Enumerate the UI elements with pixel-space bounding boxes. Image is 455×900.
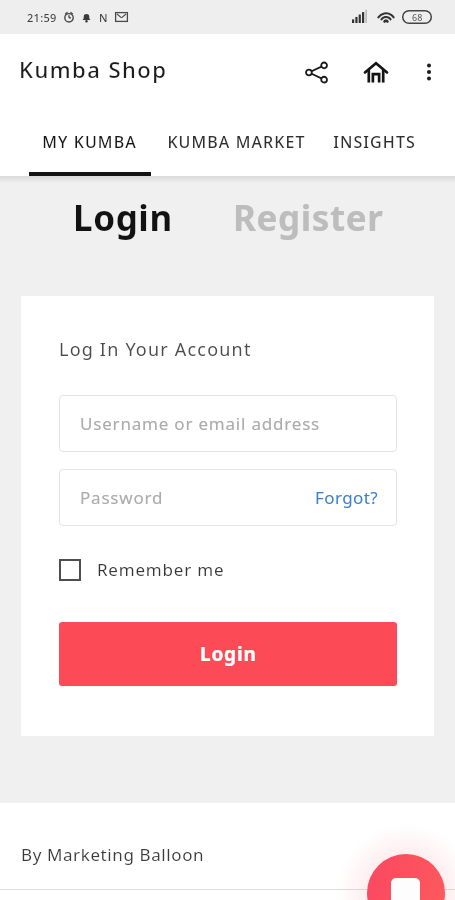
button[interactable]: Share	[293, 49, 339, 95]
button[interactable]: Username or email address	[59, 395, 397, 452]
staticText: Remember me	[97, 558, 225, 581]
staticText: Login	[73, 194, 173, 242]
staticText: Kumba Shop	[19, 54, 168, 84]
button[interactable]: INSIGHTS	[299, 110, 449, 176]
button[interactable]: More options	[408, 51, 450, 93]
staticText: Forgot?	[315, 486, 379, 509]
button[interactable]: Register	[233, 194, 384, 242]
button[interactable]: Remember me	[59, 558, 225, 581]
staticText: 21:59	[27, 10, 57, 25]
staticText: Log In Your Account	[59, 337, 252, 362]
staticText: By Marketing Balloon	[21, 843, 205, 866]
button[interactable]: Login	[73, 194, 173, 242]
staticText: 68	[412, 11, 423, 23]
staticText: N	[99, 10, 108, 25]
button[interactable]: Password	[59, 469, 397, 526]
staticText: Login	[200, 641, 257, 667]
button[interactable]: Login	[59, 622, 397, 686]
staticText: Username or email address	[80, 412, 321, 435]
button[interactable]: KUMBA MARKET	[167, 110, 305, 176]
button[interactable]: MY KUMBA	[0, 110, 179, 176]
button[interactable]: Home	[353, 49, 399, 95]
staticText: INSIGHTS	[333, 131, 416, 153]
staticText: Register	[233, 194, 384, 242]
button[interactable]: Chat	[367, 854, 445, 900]
staticText: Password	[80, 486, 164, 509]
staticText: MY KUMBA	[42, 131, 137, 153]
staticText: KUMBA MARKET	[167, 131, 305, 153]
